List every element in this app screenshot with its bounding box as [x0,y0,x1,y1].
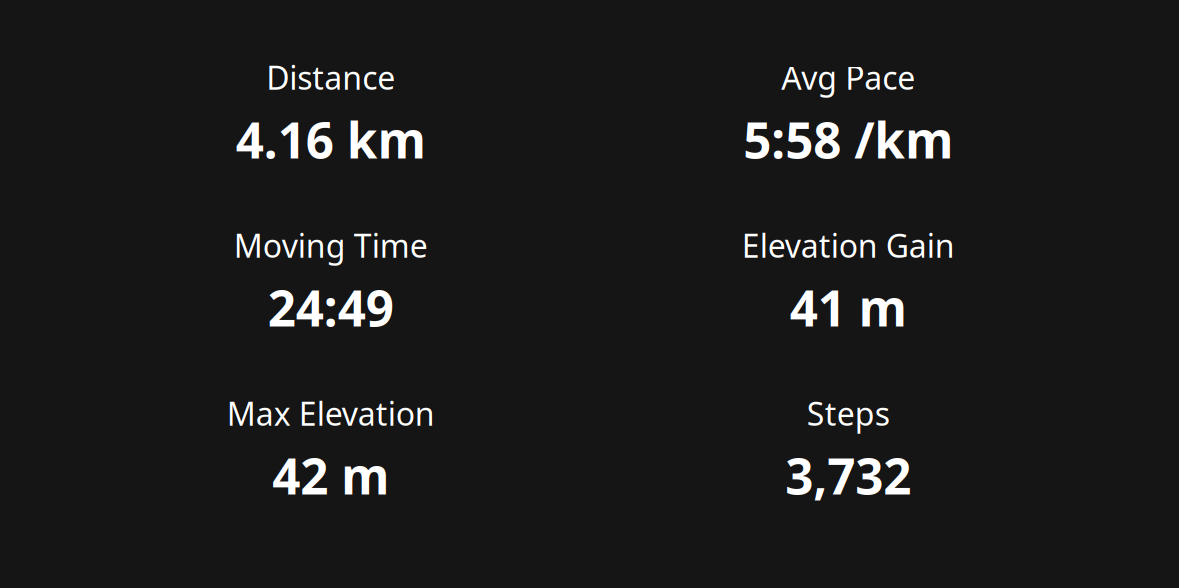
staticText: 24:49 [268,274,394,340]
staticText: 4.16 km [236,106,426,172]
staticText: 5:58 /km [743,106,953,172]
staticText: Distance [266,56,395,98]
staticText: Steps [807,392,890,434]
staticText: Moving Time [234,224,428,266]
staticText: Elevation Gain [742,224,955,266]
staticText: Avg Pace [781,56,915,98]
staticText: 41 m [790,274,907,340]
staticText: 42 m [272,442,389,508]
staticText: Max Elevation [227,392,435,434]
staticText: 3,732 [785,442,911,508]
